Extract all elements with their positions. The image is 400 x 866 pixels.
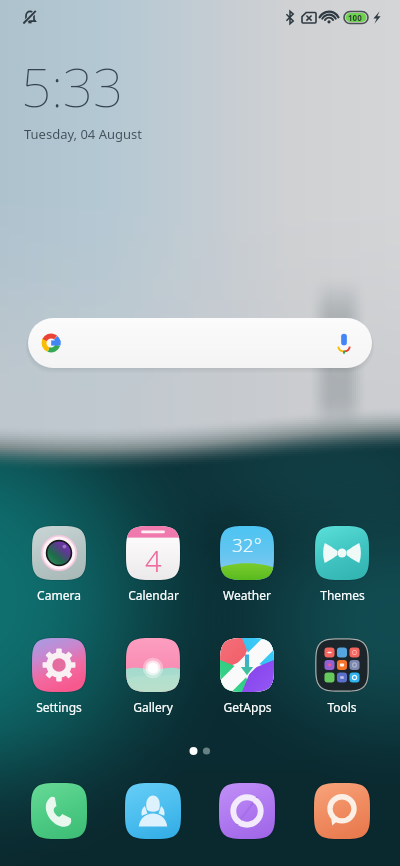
button[interactable]: Phone <box>31 783 87 839</box>
staticText: Tools <box>327 699 357 715</box>
staticText: GetApps <box>223 699 272 715</box>
staticText: 5:33 <box>21 50 124 122</box>
staticText: 100 <box>348 12 362 23</box>
staticText: 4 <box>145 541 162 580</box>
button[interactable]: Settings <box>19 633 99 715</box>
button[interactable]: Messages <box>314 783 370 839</box>
staticText: Themes <box>320 587 365 603</box>
button[interactable] <box>28 318 372 368</box>
staticText: Tuesday, 04 August <box>24 125 142 143</box>
button[interactable]: 4 <box>113 521 193 603</box>
button[interactable]: Browser <box>219 783 275 839</box>
staticText: Weather <box>223 587 271 603</box>
staticText: Gallery <box>133 699 173 715</box>
button[interactable]: Contacts <box>125 783 181 839</box>
button[interactable]: Gallery <box>113 633 193 715</box>
button[interactable]: Tools <box>302 633 382 715</box>
staticText: Calendar <box>128 587 179 603</box>
button[interactable]: GetApps <box>207 633 287 715</box>
button[interactable]: Themes <box>302 521 382 603</box>
staticText: Camera <box>37 587 81 603</box>
button[interactable]: 32° <box>207 521 287 603</box>
button[interactable]: Camera <box>19 521 99 603</box>
staticText: Settings <box>36 699 82 715</box>
staticText: 32° <box>232 532 262 558</box>
